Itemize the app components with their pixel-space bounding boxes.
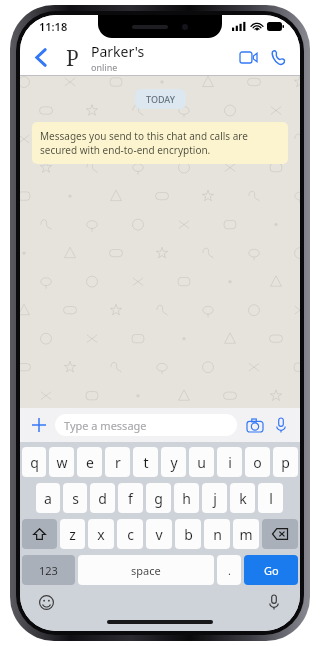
staticText: j — [213, 489, 217, 508]
button[interactable]: Attach — [28, 414, 50, 436]
button[interactable]: j — [202, 483, 227, 513]
button[interactable]: b — [175, 519, 201, 549]
staticText: d — [98, 489, 107, 508]
staticText: c — [127, 525, 134, 544]
button[interactable]: Voice message — [270, 414, 292, 436]
button[interactable]: z — [60, 519, 85, 549]
button[interactable]: Back — [28, 44, 54, 70]
button[interactable]: f — [118, 483, 143, 513]
button[interactable]: y — [161, 447, 186, 477]
button[interactable]: i — [217, 447, 242, 477]
staticText: n — [213, 525, 222, 544]
staticText: x — [97, 525, 105, 544]
button[interactable]: o — [245, 447, 270, 477]
button[interactable]: t — [133, 447, 158, 477]
button[interactable]: Shift — [22, 519, 57, 549]
button[interactable]: s — [63, 483, 87, 513]
button[interactable]: q — [22, 447, 46, 477]
staticText: Messages you send to this chat and calls… — [40, 129, 280, 157]
staticText: e — [86, 453, 94, 472]
staticText: u — [197, 453, 206, 472]
staticText: f — [128, 489, 133, 508]
button[interactable]: Type a message — [55, 414, 237, 436]
button[interactable]: a — [36, 483, 60, 513]
button[interactable]: e — [77, 447, 102, 477]
staticText: l — [269, 489, 273, 508]
button[interactable]: v — [146, 519, 172, 549]
staticText: k — [239, 489, 247, 508]
button[interactable]: Go — [244, 555, 298, 585]
staticText: s — [72, 489, 79, 508]
button[interactable]: Parker's — [91, 42, 234, 73]
staticText: a — [44, 489, 52, 508]
staticText: Go — [264, 563, 279, 578]
staticText: p — [281, 453, 290, 472]
button[interactable]: c — [117, 519, 143, 549]
button[interactable]: 123 — [22, 555, 75, 585]
staticText: 123 — [39, 563, 58, 578]
staticText: i — [228, 453, 232, 472]
staticText: o — [253, 453, 262, 472]
staticText: . — [228, 563, 231, 578]
button[interactable]: g — [146, 483, 171, 513]
staticText: q — [30, 453, 39, 472]
button[interactable]: m — [233, 519, 259, 549]
button[interactable]: space — [78, 555, 214, 585]
button[interactable]: Voice call — [264, 43, 292, 71]
staticText: Parker's — [91, 42, 145, 61]
staticText: y — [170, 453, 178, 472]
staticText: w — [56, 453, 68, 472]
button[interactable]: Emoji — [34, 590, 58, 614]
staticText: space — [131, 563, 161, 578]
button[interactable]: Video call — [234, 43, 262, 71]
button[interactable]: w — [49, 447, 74, 477]
button[interactable]: k — [230, 483, 255, 513]
button[interactable]: Dictation — [262, 590, 286, 614]
button[interactable]: r — [105, 447, 130, 477]
staticText: v — [155, 525, 163, 544]
staticText: g — [154, 489, 163, 508]
staticText: b — [184, 525, 193, 544]
staticText: 11:18 — [39, 19, 68, 34]
button[interactable]: . — [217, 555, 241, 585]
staticText: online — [91, 61, 118, 73]
staticText: P — [66, 44, 79, 70]
button[interactable]: l — [258, 483, 283, 513]
staticText: z — [69, 525, 76, 544]
button[interactable]: x — [88, 519, 114, 549]
staticText: h — [182, 489, 191, 508]
button[interactable]: h — [174, 483, 199, 513]
staticText: m — [239, 525, 253, 544]
staticText: Type a message — [64, 418, 147, 433]
button[interactable]: n — [204, 519, 230, 549]
staticText: r — [115, 453, 121, 472]
button[interactable]: Backspace — [262, 519, 298, 549]
button[interactable]: d — [90, 483, 115, 513]
button[interactable]: u — [189, 447, 214, 477]
staticText: t — [143, 453, 149, 472]
button[interactable]: Camera — [244, 414, 266, 436]
button[interactable]: p — [273, 447, 298, 477]
staticText: TODAY — [146, 93, 175, 105]
